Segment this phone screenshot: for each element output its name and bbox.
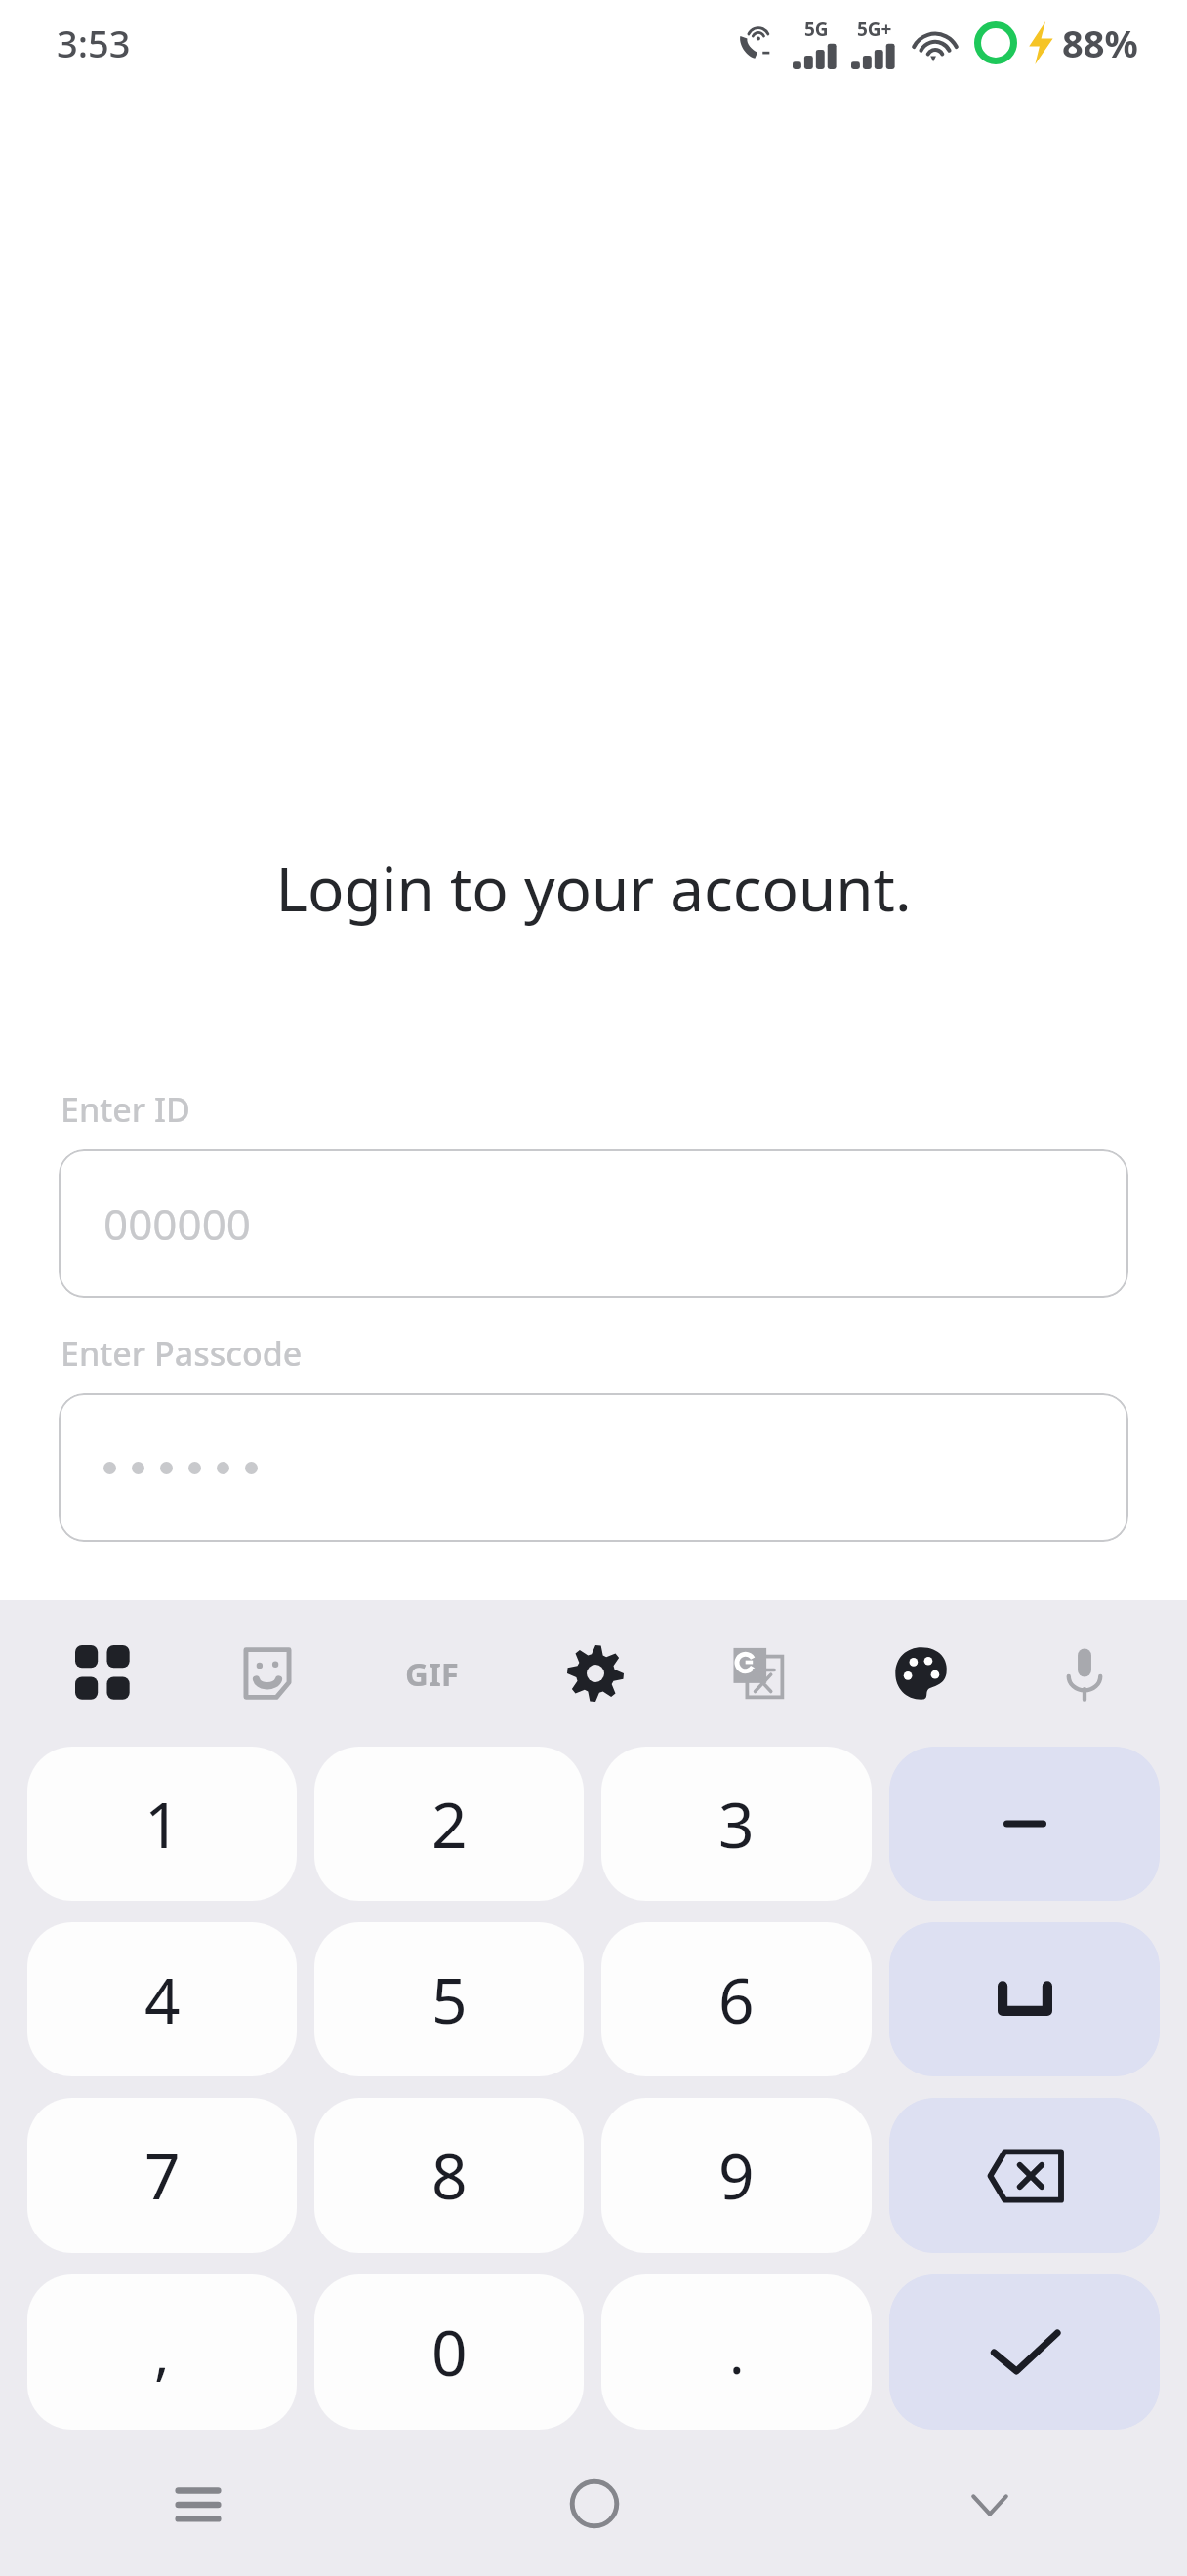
button[interactable]: Settings bbox=[513, 1600, 676, 1747]
staticText: 000000 bbox=[103, 1194, 252, 1253]
button[interactable]: Home bbox=[396, 2431, 792, 2576]
staticText: , bbox=[154, 2314, 170, 2391]
staticText: 5 bbox=[431, 1957, 468, 2042]
staticText: 8 bbox=[431, 2133, 468, 2218]
button[interactable]: 000000 bbox=[59, 1149, 1128, 1298]
staticText: 5G+ bbox=[857, 17, 892, 42]
staticText: 0 bbox=[431, 2310, 468, 2395]
button[interactable]: Hide keyboard bbox=[792, 2431, 1187, 2576]
button[interactable]: Enter bbox=[889, 2274, 1160, 2430]
staticText: 3:53 bbox=[57, 18, 131, 68]
staticText: Login to your account. bbox=[0, 847, 1187, 929]
button[interactable]: Themes bbox=[839, 1600, 1003, 1747]
staticText: . bbox=[729, 2314, 745, 2391]
button[interactable]: Space bbox=[889, 1922, 1160, 2076]
button[interactable]: GIF bbox=[349, 1600, 513, 1747]
staticText: 6 bbox=[718, 1957, 755, 2042]
button[interactable]: 0 bbox=[314, 2274, 584, 2430]
button[interactable]: Dash bbox=[889, 1747, 1160, 1901]
staticText: 2 bbox=[431, 1782, 468, 1867]
staticText: 3 bbox=[718, 1782, 755, 1867]
button[interactable]: 4 bbox=[27, 1922, 297, 2076]
staticText: 5G bbox=[804, 17, 829, 42]
button[interactable]: 5 bbox=[314, 1922, 584, 2076]
button[interactable]: . bbox=[601, 2274, 872, 2430]
staticText: 4 bbox=[144, 1957, 181, 2042]
staticText: Enter Passcode bbox=[61, 1331, 303, 1376]
button[interactable]: 3 bbox=[601, 1747, 872, 1901]
button[interactable]: 8 bbox=[314, 2098, 584, 2253]
button[interactable]: Stickers bbox=[185, 1600, 349, 1747]
button[interactable]: 1 bbox=[27, 1747, 297, 1901]
button[interactable]: 2 bbox=[314, 1747, 584, 1901]
staticText: 1 bbox=[144, 1782, 181, 1867]
button[interactable]: , bbox=[27, 2274, 297, 2430]
staticText: 9 bbox=[718, 2133, 755, 2218]
button[interactable] bbox=[59, 1393, 1128, 1542]
button[interactable]: 7 bbox=[27, 2098, 297, 2253]
button[interactable]: Backspace bbox=[889, 2098, 1160, 2253]
staticText: 7 bbox=[144, 2133, 181, 2218]
staticText: Enter ID bbox=[61, 1087, 190, 1132]
staticText: 88% bbox=[1062, 18, 1138, 68]
staticText: GIF bbox=[405, 1652, 459, 1696]
button[interactable]: 6 bbox=[601, 1922, 872, 2076]
button[interactable]: 9 bbox=[601, 2098, 872, 2253]
button[interactable]: Voice input bbox=[1003, 1600, 1166, 1747]
button[interactable]: Recents bbox=[0, 2431, 396, 2576]
button[interactable]: Apps bbox=[21, 1600, 185, 1747]
button[interactable]: Translate bbox=[676, 1600, 839, 1747]
